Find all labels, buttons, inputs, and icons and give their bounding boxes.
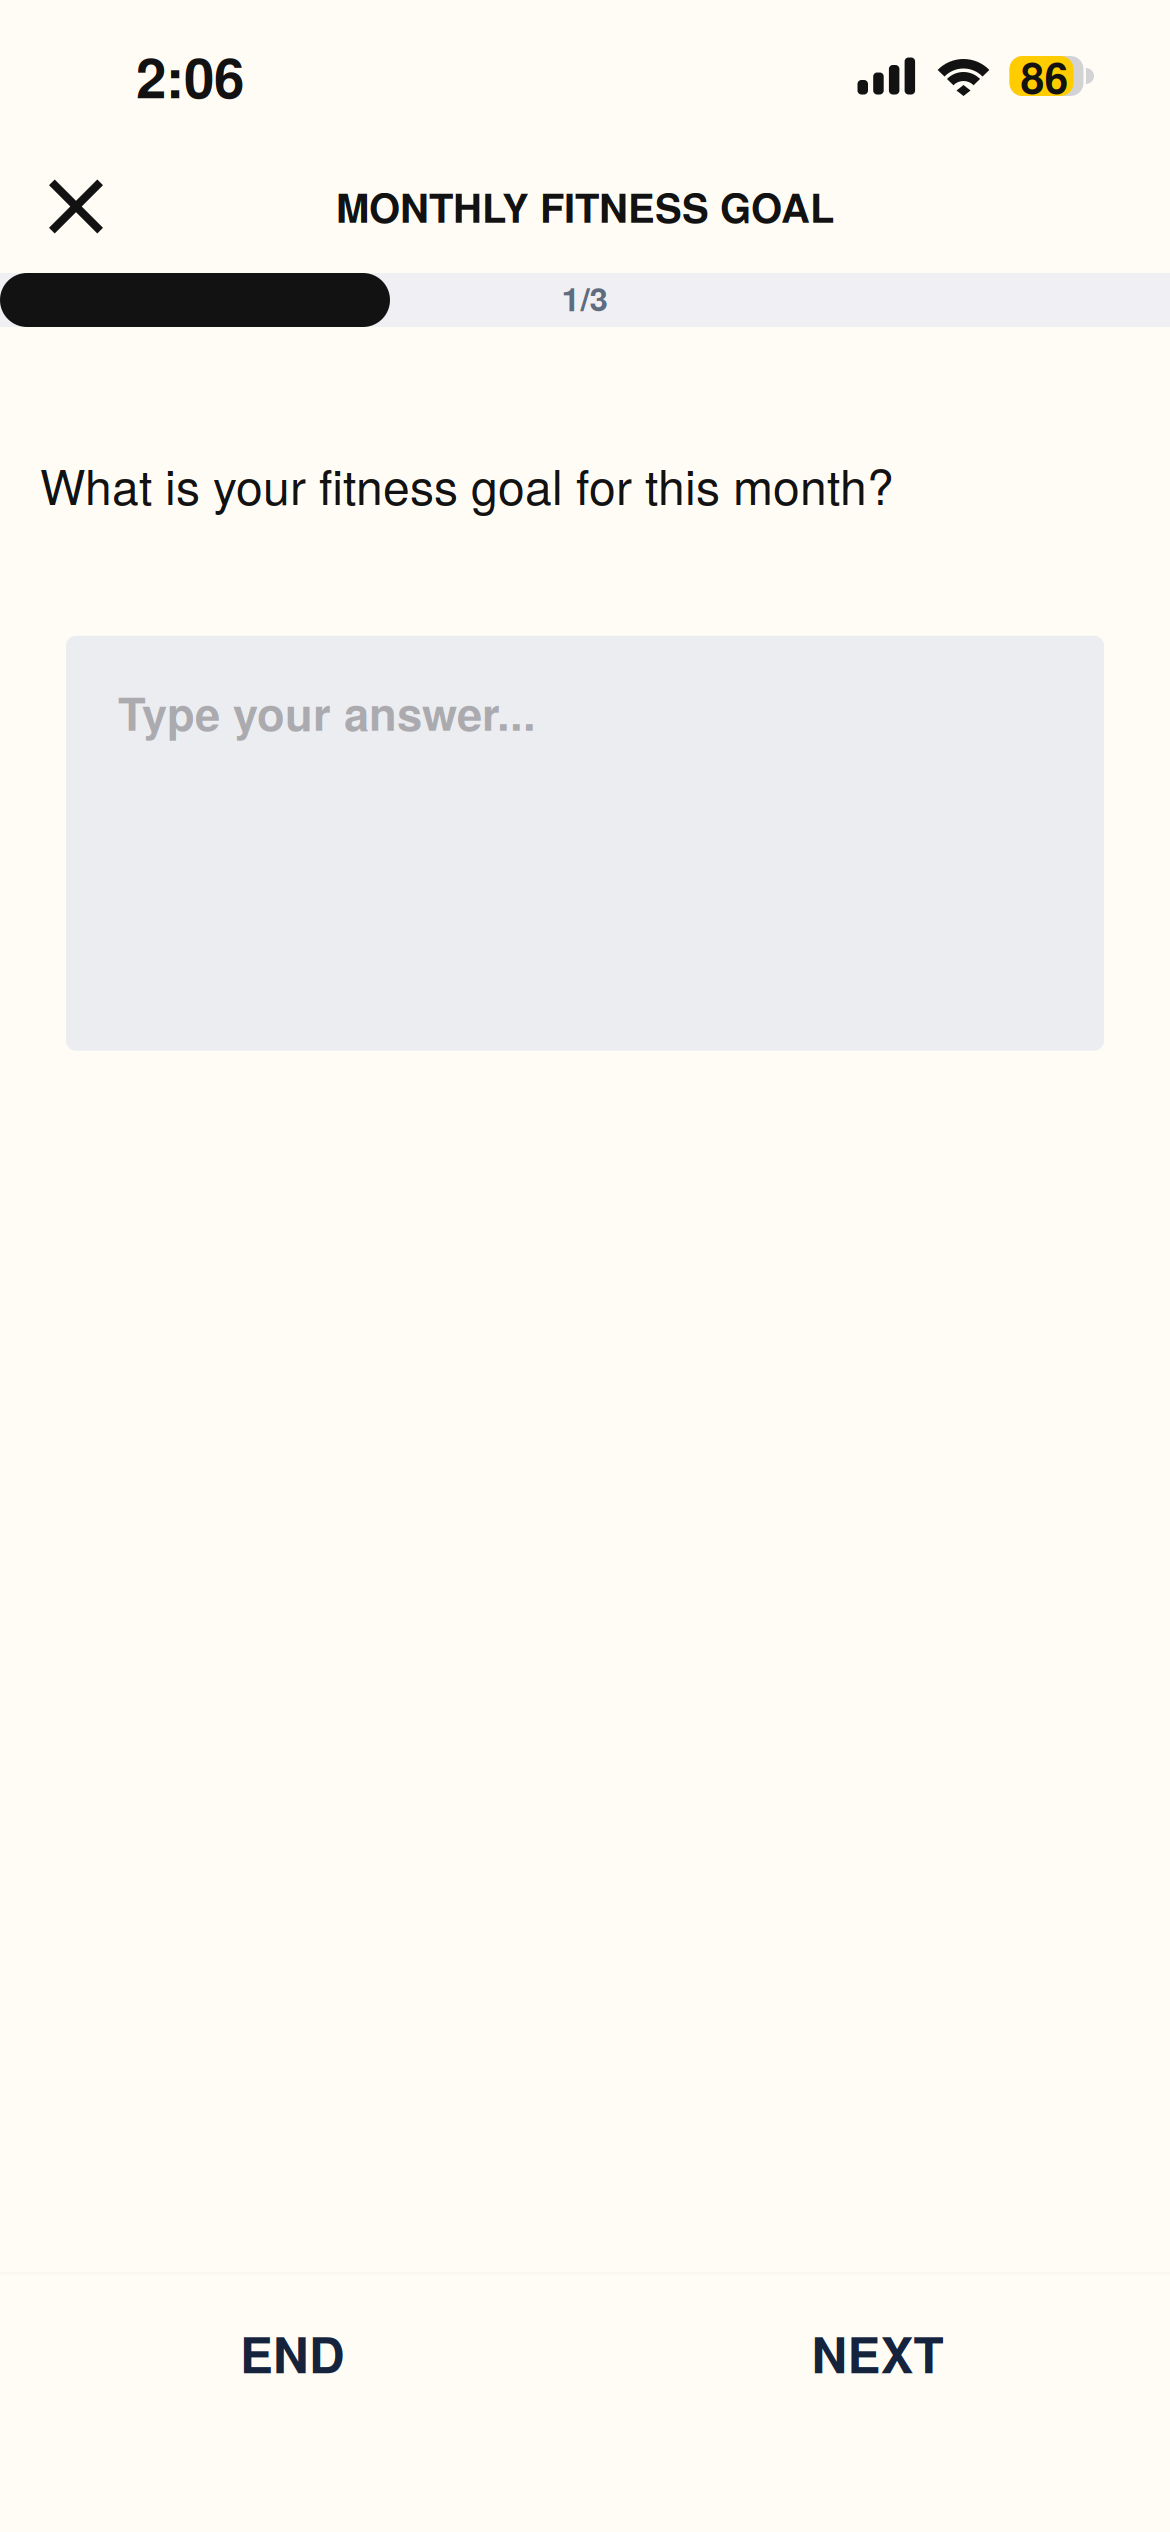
staticText: 1/3 [561,274,608,321]
staticText: END [240,2318,345,2388]
staticText: What is your fitness goal for this month… [40,450,894,519]
staticText: MONTHLY FITNESS GOAL [336,178,834,235]
staticText: 86 [1020,45,1068,107]
staticText: 2:06 [136,37,244,115]
button[interactable]: END [147,2288,437,2418]
staticText: NEXT [811,2318,943,2388]
button[interactable]: Close [23,153,129,259]
button[interactable]: NEXT [732,2288,1022,2418]
staticText: Type your answer... [118,680,536,745]
